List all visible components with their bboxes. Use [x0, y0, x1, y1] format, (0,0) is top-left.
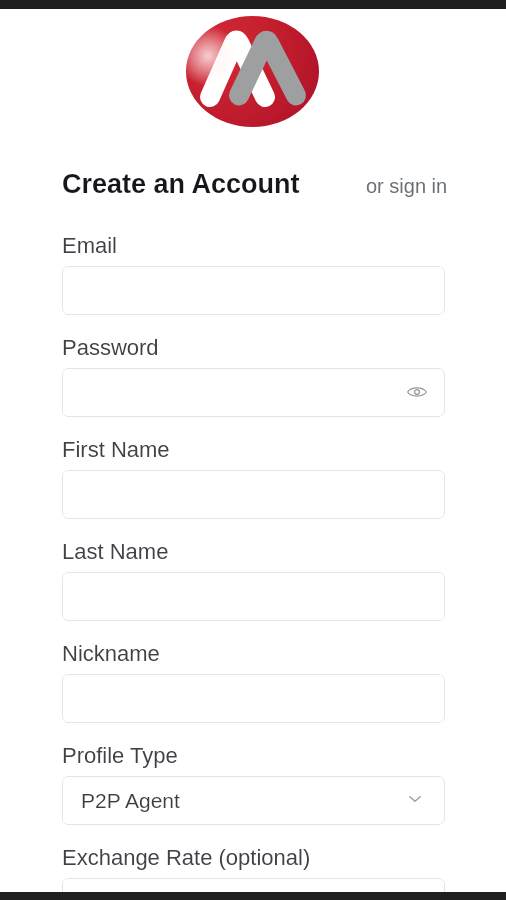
staticText: Nickname	[62, 641, 160, 666]
staticText: First Name	[62, 437, 170, 462]
staticText: Password	[62, 335, 159, 360]
staticText: Email	[62, 233, 118, 258]
staticText: Create an Account	[62, 169, 300, 199]
staticText: Exchange Rate (optional)	[62, 845, 311, 870]
staticText: Profile Type	[62, 743, 178, 768]
button[interactable]	[62, 470, 445, 519]
button[interactable]: or sign in	[364, 171, 450, 201]
button[interactable]	[62, 878, 445, 900]
button[interactable]	[62, 572, 445, 621]
staticText: or sign in	[366, 175, 448, 197]
other: Show password	[404, 379, 430, 405]
button[interactable]	[62, 266, 445, 315]
button[interactable]: P2P Agent	[62, 776, 445, 825]
staticText: Last Name	[62, 539, 169, 564]
button[interactable]: Show password	[62, 368, 445, 417]
other: Open profile type list	[403, 787, 427, 811]
staticText: P2P Agent	[81, 789, 180, 812]
button[interactable]	[62, 674, 445, 723]
